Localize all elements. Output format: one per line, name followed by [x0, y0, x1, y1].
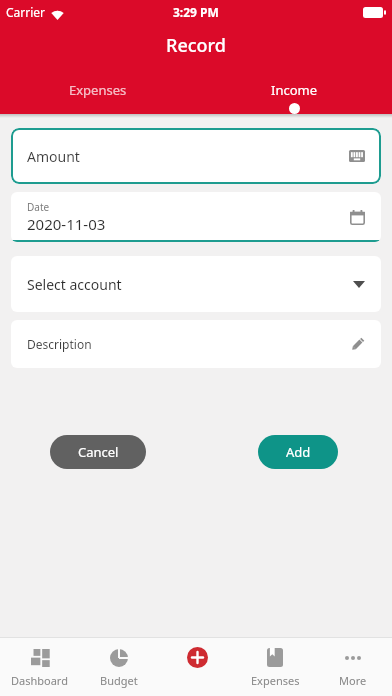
staticText: Record [166, 33, 226, 58]
staticText: Description [27, 336, 92, 352]
button[interactable]: Expenses [0, 81, 196, 114]
button[interactable]: Income [196, 81, 392, 114]
button[interactable]: Cancel [50, 435, 146, 469]
staticText: Income [271, 81, 318, 99]
staticText: Date [27, 200, 50, 214]
button[interactable] [158, 638, 236, 696]
staticText: More [339, 673, 367, 688]
staticText: 3:29 PM [173, 4, 219, 20]
button[interactable]: Add [258, 435, 338, 469]
button[interactable]: Dashboard [0, 638, 79, 696]
staticText: Select account [27, 275, 122, 294]
button[interactable]: Date [11, 192, 381, 242]
button[interactable]: Description [11, 320, 381, 368]
button[interactable]: Budget [79, 638, 158, 696]
staticText: Budget [100, 673, 138, 688]
button[interactable]: Select account [11, 256, 381, 312]
staticText: Amount [27, 147, 80, 166]
staticText: Expenses [251, 673, 300, 688]
staticText: Add [286, 443, 311, 461]
button[interactable]: More [314, 638, 392, 696]
staticText: Cancel [78, 443, 119, 461]
staticText: Dashboard [11, 673, 68, 688]
staticText: Carrier [6, 4, 46, 20]
staticText: 2020-11-03 [27, 214, 106, 234]
button[interactable]: Expenses [236, 638, 314, 696]
button[interactable]: Amount [11, 128, 381, 184]
staticText: Expenses [69, 81, 127, 99]
